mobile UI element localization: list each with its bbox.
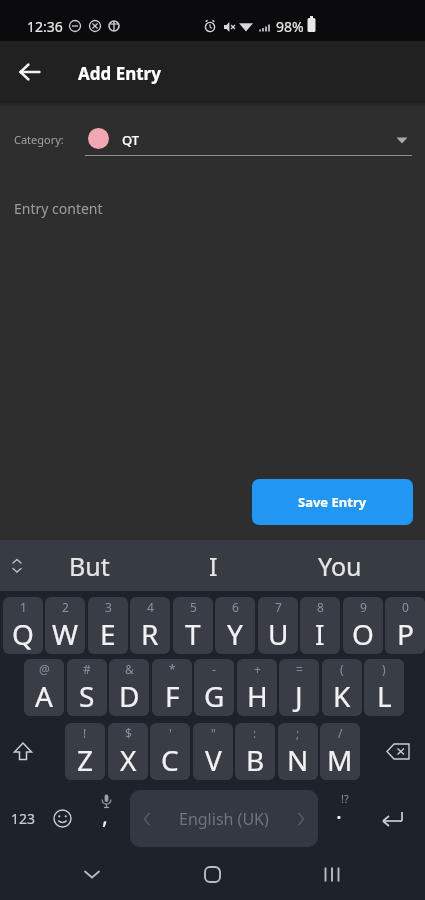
button[interactable]: English (UK)	[130, 790, 318, 847]
button[interactable]: You	[281, 540, 399, 591]
button[interactable]: QT	[84, 115, 412, 159]
staticText: R	[141, 615, 159, 653]
staticText: 3	[105, 599, 112, 615]
staticText: 9	[360, 599, 367, 615]
staticText: Add Entry	[78, 62, 161, 85]
staticText: B	[246, 741, 265, 779]
button[interactable]: But	[30, 540, 148, 591]
staticText: W	[52, 615, 79, 653]
staticText: 5	[190, 599, 197, 615]
staticText: 4	[147, 599, 154, 615]
staticText: ;	[296, 725, 300, 741]
staticText: "	[211, 725, 216, 741]
button[interactable]: G	[194, 659, 234, 716]
button[interactable]	[182, 850, 242, 898]
staticText: P	[397, 615, 414, 653]
staticText: *	[169, 661, 176, 677]
staticText: Entry content	[14, 199, 103, 218]
staticText: +	[254, 661, 261, 677]
staticText: L	[377, 677, 392, 715]
staticText: I	[315, 615, 325, 653]
staticText: '	[169, 725, 172, 741]
staticText: G	[204, 677, 225, 715]
staticText: =	[296, 661, 303, 677]
button[interactable]: S	[67, 659, 107, 716]
staticText: &	[125, 661, 134, 677]
staticText: 0	[402, 599, 409, 615]
button[interactable]: 123	[4, 790, 42, 847]
staticText: 12:36	[27, 17, 63, 36]
staticText: O	[352, 615, 374, 653]
staticText: I	[209, 549, 218, 583]
staticText: @	[39, 661, 50, 677]
staticText: C	[161, 741, 179, 779]
button[interactable]	[368, 790, 416, 847]
staticText: H	[247, 677, 268, 715]
staticText: ,	[102, 800, 108, 830]
staticText: (	[340, 661, 344, 677]
button[interactable]	[8, 50, 52, 94]
button[interactable]	[44, 790, 80, 847]
button[interactable]: ,	[88, 790, 126, 847]
staticText: X	[120, 741, 137, 779]
staticText: You	[318, 549, 362, 583]
button[interactable]: T	[173, 597, 213, 654]
staticText: M	[327, 741, 353, 779]
staticText: Y	[227, 615, 243, 653]
button[interactable]: U	[258, 597, 298, 654]
button[interactable]: Y	[215, 597, 255, 654]
button[interactable]: A	[24, 659, 64, 716]
staticText: 8	[317, 599, 324, 615]
button[interactable]	[302, 850, 362, 898]
staticText: )	[382, 661, 386, 677]
button[interactable]: B	[235, 723, 275, 780]
staticText: S	[79, 677, 95, 715]
staticText: But	[69, 549, 110, 583]
staticText: 6	[232, 599, 239, 615]
button[interactable]: Save Entry	[252, 479, 413, 525]
staticText: #	[83, 661, 91, 677]
button[interactable]: I	[154, 540, 272, 591]
staticText: !?	[341, 791, 349, 806]
staticText: 2	[62, 599, 69, 615]
button[interactable]: R	[130, 597, 170, 654]
button[interactable]: F	[152, 659, 192, 716]
staticText: E	[100, 615, 116, 653]
button[interactable]	[376, 723, 420, 780]
button[interactable]: C	[150, 723, 190, 780]
button[interactable]: L	[364, 659, 404, 716]
staticText: !	[83, 725, 87, 741]
button[interactable]: W	[45, 597, 85, 654]
button[interactable]: J	[279, 659, 319, 716]
button[interactable]: !?	[324, 790, 360, 847]
button[interactable]: Q	[3, 597, 43, 654]
button[interactable]: O	[343, 597, 383, 654]
button[interactable]	[62, 850, 122, 898]
staticText: D	[119, 677, 140, 715]
button[interactable]: D	[109, 659, 149, 716]
staticText: :	[253, 725, 257, 741]
button[interactable]: K	[322, 659, 362, 716]
button[interactable]: H	[237, 659, 277, 716]
staticText: U	[268, 615, 289, 653]
staticText: English (UK)	[179, 808, 269, 830]
button[interactable]: E	[88, 597, 128, 654]
staticText: 123	[11, 809, 36, 828]
staticText: T	[185, 615, 201, 653]
button[interactable]: I	[300, 597, 340, 654]
button[interactable]: X	[108, 723, 148, 780]
button[interactable]: P	[385, 597, 425, 654]
button[interactable]: M	[320, 723, 360, 780]
button[interactable]: Z	[65, 723, 105, 780]
staticText: -	[212, 661, 216, 677]
staticText: Q	[12, 615, 34, 653]
staticText: QT	[122, 131, 140, 149]
staticText: V	[205, 741, 222, 779]
staticText: 7	[275, 599, 282, 615]
staticText: Category:	[14, 132, 64, 147]
staticText: A	[35, 677, 53, 715]
button[interactable]: V	[193, 723, 233, 780]
button[interactable]: N	[278, 723, 318, 780]
button[interactable]	[2, 723, 44, 780]
staticText: J	[295, 677, 303, 715]
